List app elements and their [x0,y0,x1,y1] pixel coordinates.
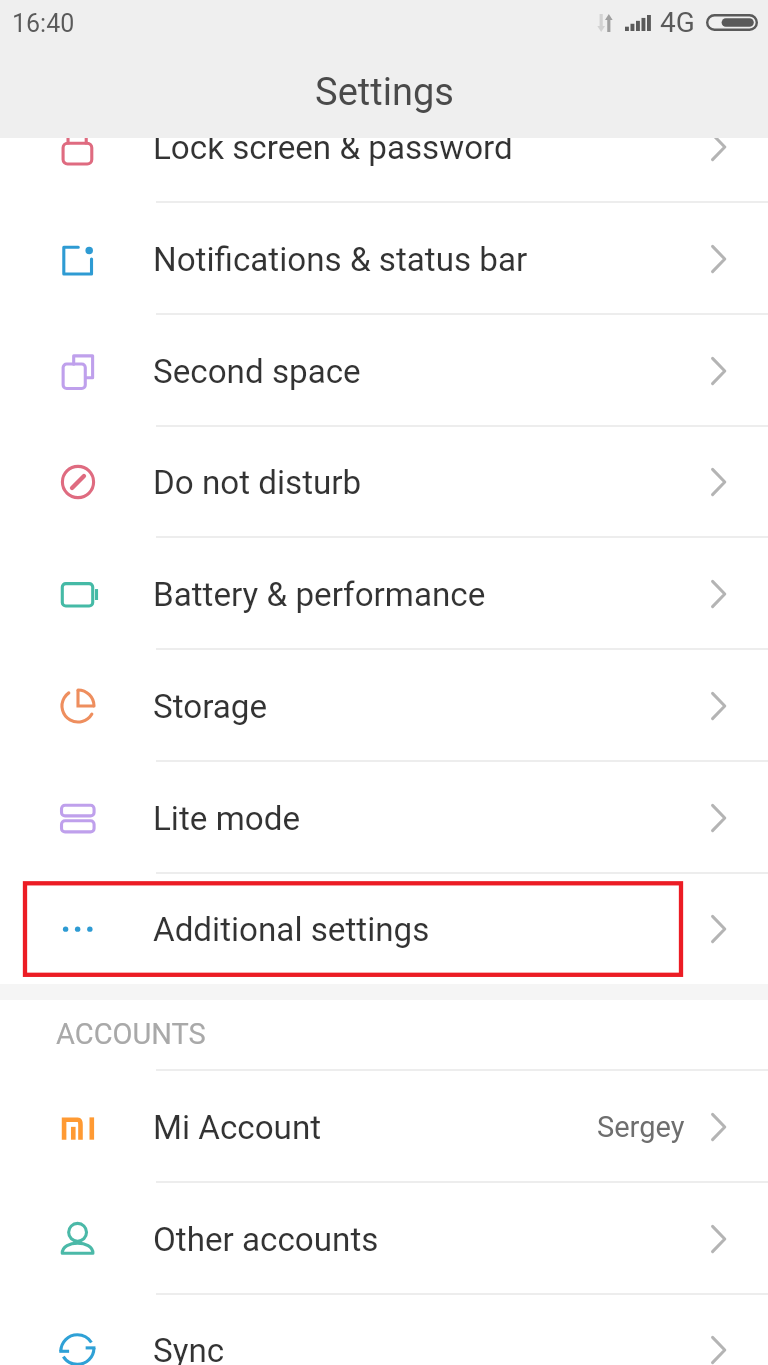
staticText: Battery & performance [153,575,486,614]
button[interactable]: Notifications & status bar [0,203,768,315]
staticText: Sync [153,1331,225,1365]
staticText: Sergey [597,1110,685,1144]
button[interactable]: Do not disturb [0,426,768,538]
staticText: 16:40 [12,9,75,38]
staticText: ACCOUNTS [56,1017,206,1051]
staticText: Other accounts [153,1220,379,1259]
button[interactable]: Mi Account [0,1071,768,1183]
button[interactable]: Sync [0,1294,768,1365]
staticText: Additional settings [153,910,430,949]
staticText: Mi Account [153,1108,322,1147]
button[interactable]: Second space [0,315,768,427]
staticText: Lite mode [153,799,300,838]
staticText: 4G [660,6,695,39]
button[interactable]: Lite mode [0,762,768,874]
staticText: Settings [315,70,454,115]
button[interactable]: Storage [0,650,768,762]
staticText: Storage [153,687,268,726]
button[interactable]: Battery & performance [0,538,768,650]
staticText: Lock screen & password [153,138,513,167]
button[interactable]: Additional settings [0,873,768,984]
staticText: Notifications & status bar [153,240,528,279]
staticText: Do not disturb [153,463,362,502]
button[interactable]: Other accounts [0,1183,768,1295]
button[interactable]: Lock screen & password [0,138,768,203]
staticText: Second space [153,352,361,391]
